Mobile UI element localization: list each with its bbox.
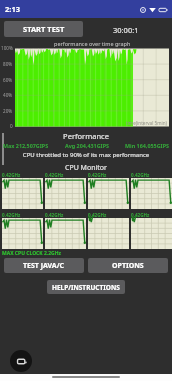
staticText: 20% [3, 108, 13, 114]
staticText: Performance [0, 131, 172, 141]
button[interactable]: TEST JAVA/C [4, 258, 84, 273]
button[interactable]: OPTIONS [88, 258, 168, 273]
staticText: Max 212,507GIPS [3, 142, 49, 149]
staticText: 0.42GHz [45, 212, 64, 218]
staticText: MAX CPU CLOCK 2.2GHz [2, 250, 61, 257]
staticText: performance over time graph [54, 40, 131, 47]
staticText: CPU Monitor [0, 163, 172, 173]
staticText: 80% [3, 61, 13, 67]
staticText: 0.42GHz [131, 172, 150, 178]
staticText: 40% [3, 92, 13, 98]
staticText: Min 164,055GIPS [125, 142, 169, 149]
button[interactable]: HELP/INSTRUCTIONS [47, 280, 125, 294]
staticText: CPU throttled to 90% of its max performa… [0, 151, 172, 159]
staticText: 0.42GHz [45, 172, 64, 178]
staticText: time(interval 5min) [126, 120, 167, 126]
staticText: 100% [1, 45, 13, 51]
staticText: 2:13 [5, 4, 20, 14]
staticText: 0.42GHz [2, 212, 21, 218]
staticText: 0.42GHz [131, 212, 150, 218]
staticText: 0 [10, 123, 13, 129]
staticText: 60% [3, 77, 13, 83]
staticText: 0.42GHz [88, 172, 107, 178]
staticText: TEST JAVA/C [23, 261, 65, 271]
staticText: Avg 204,431GIPS [65, 142, 109, 149]
staticText: START TEST [23, 24, 65, 34]
button[interactable]: START TEST [4, 21, 83, 37]
staticText: OPTIONS [112, 261, 144, 271]
staticText: 0.42GHz [2, 172, 21, 178]
staticText: HELP/INSTRUCTIONS [52, 283, 120, 292]
staticText: 30:00:1 [113, 25, 139, 35]
button[interactable]: Rotate screen [10, 350, 32, 372]
staticText: 0.42GHz [88, 212, 107, 218]
